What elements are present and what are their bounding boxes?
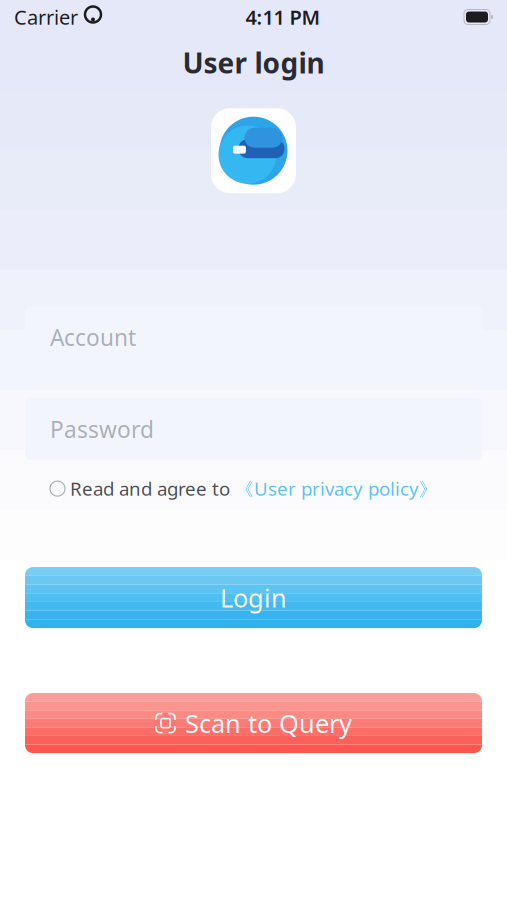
- staticText: Carrier: [14, 4, 78, 30]
- staticText: 4:11 PM: [245, 4, 320, 30]
- button[interactable]: Scan to Query: [25, 693, 482, 753]
- staticText: Read and agree to: [70, 476, 235, 501]
- button[interactable]: 《User privacy policy》: [235, 476, 438, 501]
- staticText: Password: [50, 414, 154, 444]
- button[interactable]: Login: [25, 567, 482, 628]
- staticText: Scan to Query: [185, 706, 352, 740]
- staticText: 《User privacy policy》: [235, 476, 438, 501]
- button[interactable]: Agree to user privacy policy: [50, 481, 70, 496]
- staticText: User login: [182, 44, 324, 81]
- staticText: Login: [220, 581, 287, 614]
- staticText: Account: [50, 322, 136, 352]
